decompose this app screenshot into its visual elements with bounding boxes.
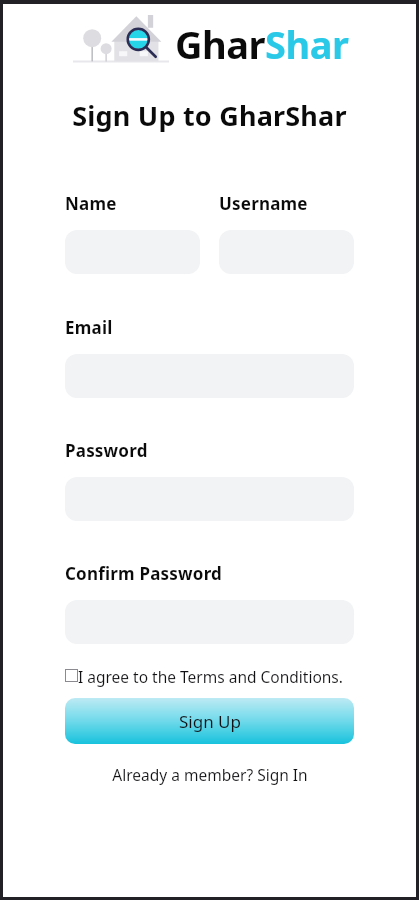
button[interactable]: I agree to the Terms and Conditions. [65, 666, 354, 687]
staticText: Password [65, 439, 148, 462]
staticText: Confirm Password [65, 562, 223, 585]
staticText: Username [219, 192, 308, 215]
staticText: Sign Up [179, 710, 241, 733]
button[interactable]: Already a member? Sign In [65, 764, 354, 785]
staticText: Sign Up to GharShar [72, 97, 347, 134]
button[interactable]: Sign Up [65, 698, 354, 744]
staticText: Email [65, 316, 113, 339]
staticText: Ghar [175, 18, 265, 70]
staticText: Already a member? Sign In [112, 764, 308, 785]
staticText: Shar [265, 18, 349, 70]
staticText: I agree to the Terms and Conditions. [78, 666, 343, 687]
staticText: Name [65, 192, 117, 215]
